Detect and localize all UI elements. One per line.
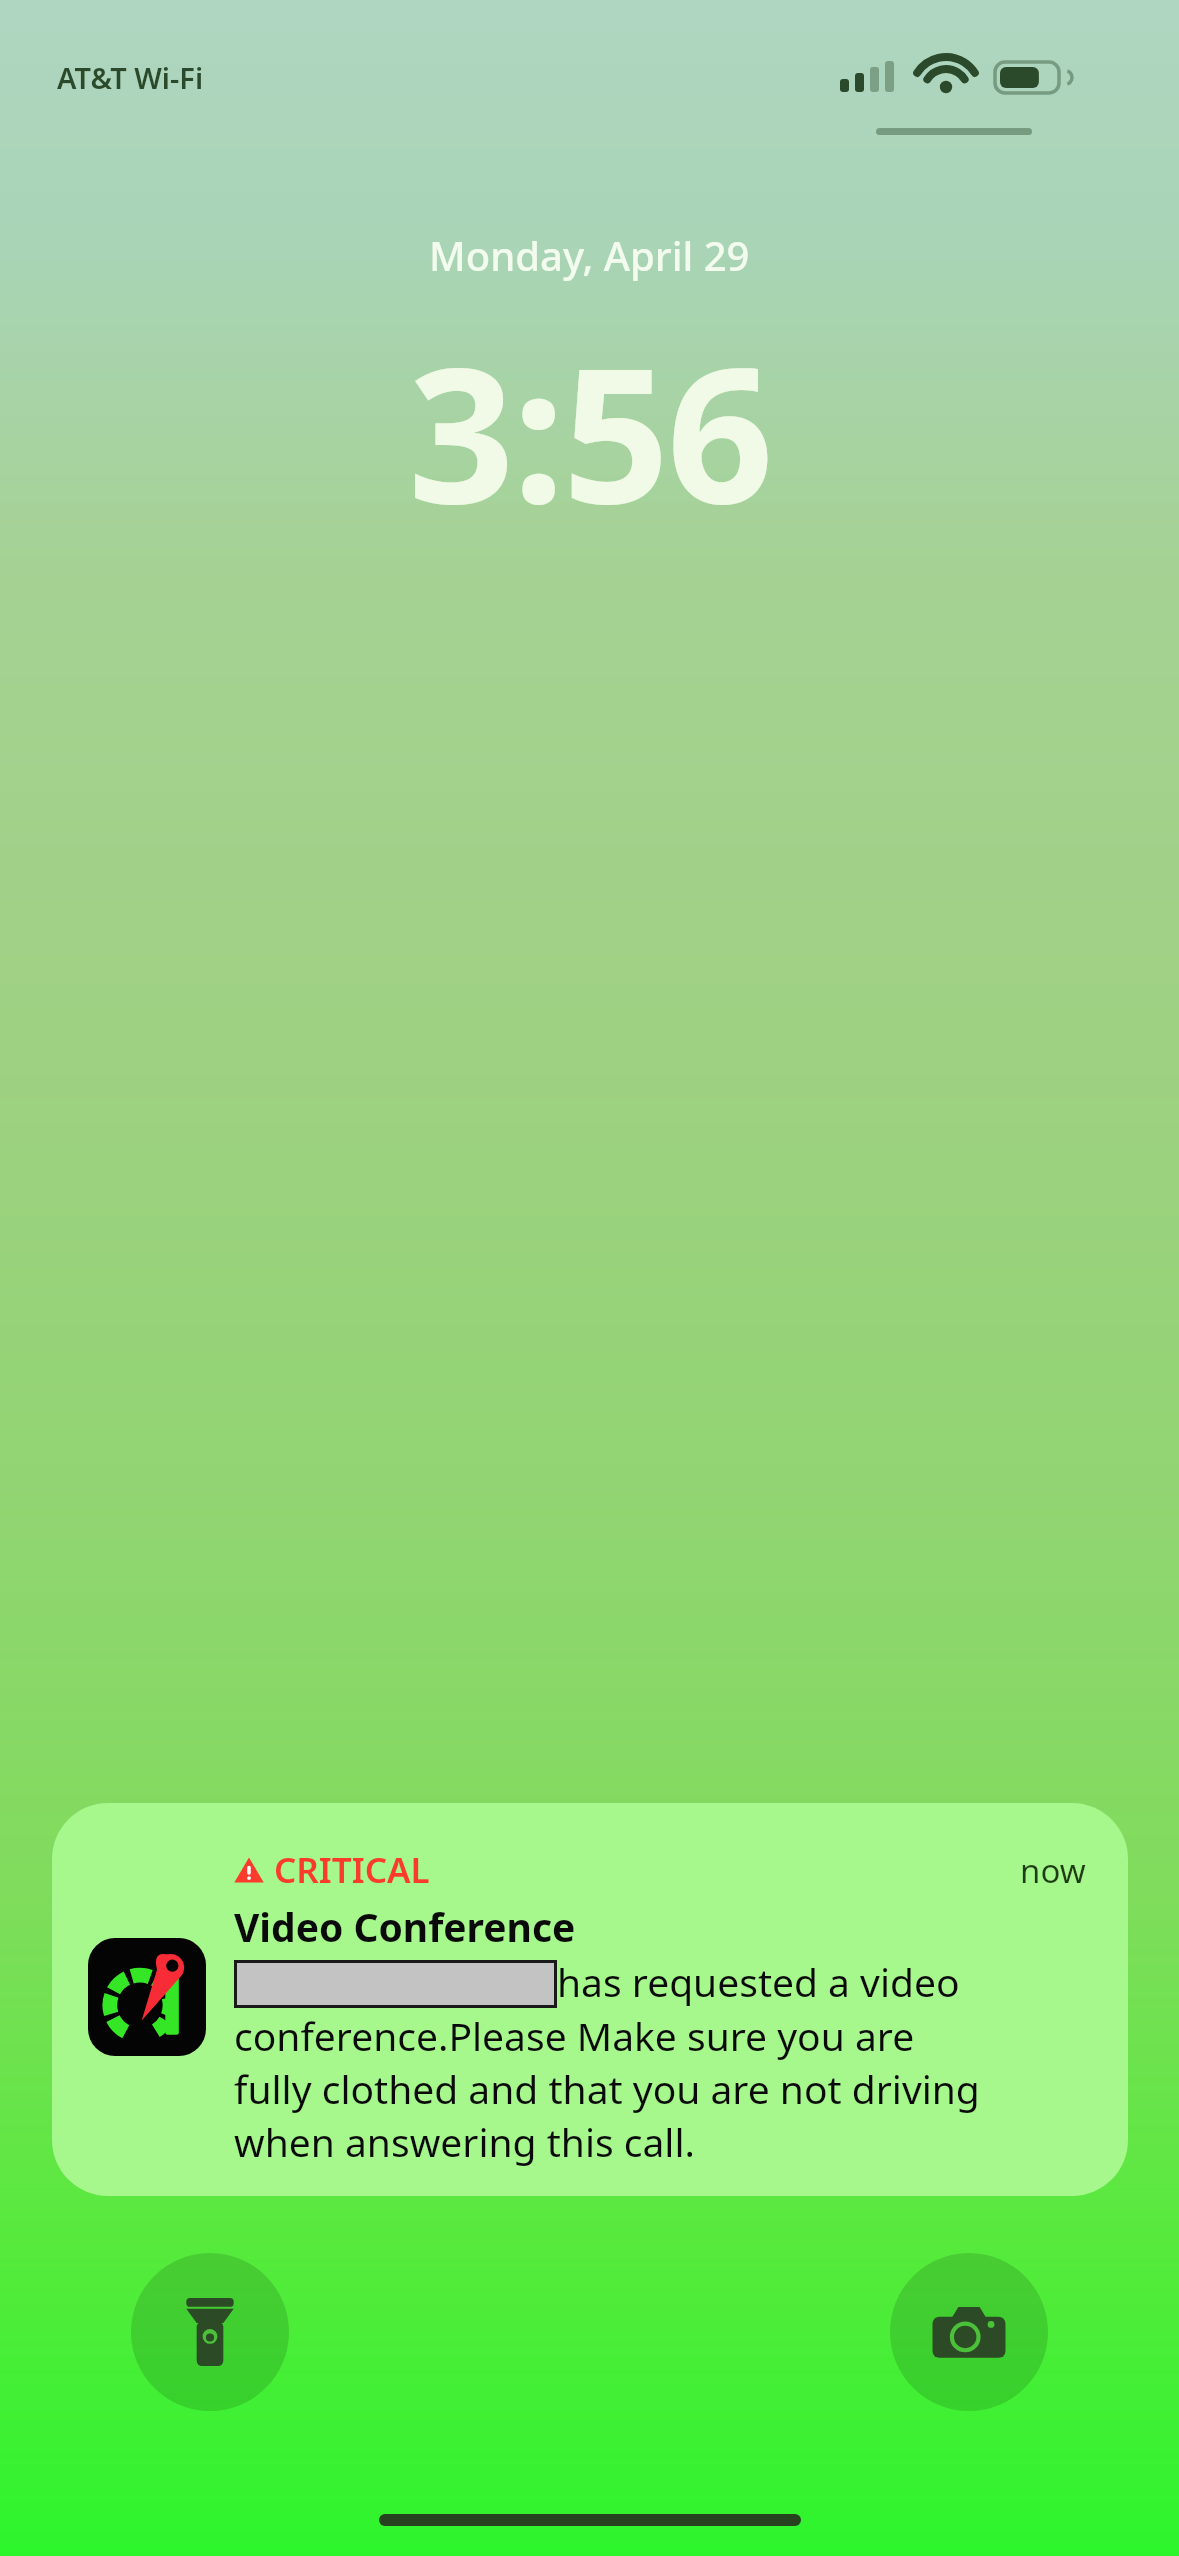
- staticText: AT&T Wi-Fi: [57, 58, 204, 97]
- button[interactable]: Camera: [890, 2253, 1048, 2411]
- staticText: now: [1020, 1848, 1086, 1893]
- button[interactable]: Flashlight: [131, 2253, 289, 2411]
- staticText: fully clothed and that you are not drivi…: [234, 2062, 980, 2115]
- staticText: Video Conference: [234, 1900, 576, 1953]
- staticText: has requested a video: [557, 1955, 960, 2008]
- staticText: conference.Please Make sure you are: [234, 2009, 915, 2062]
- staticText: Monday, April 29: [429, 228, 750, 282]
- staticText: when answering this call.: [234, 2115, 695, 2168]
- button[interactable]: CRITICAL: [52, 1803, 1128, 2196]
- staticText: CRITICAL: [274, 1846, 430, 1894]
- staticText: 3:56: [408, 304, 772, 557]
